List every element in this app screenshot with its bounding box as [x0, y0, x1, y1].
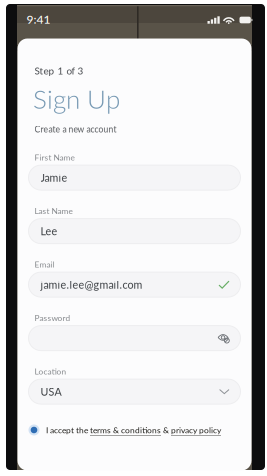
staticText: Jamie — [40, 171, 67, 184]
staticText: 9:41 — [26, 12, 50, 26]
button[interactable]: Lee — [28, 219, 240, 244]
button[interactable]: I accept the terms & conditions & privac… — [28, 423, 240, 437]
staticText: Email — [34, 259, 54, 269]
staticText: USA — [40, 385, 61, 398]
button[interactable]: jamie.lee@gmail.com — [28, 272, 240, 297]
staticText: Last Name — [34, 206, 72, 216]
button[interactable]: Jamie — [28, 165, 240, 190]
staticText: Password — [34, 313, 70, 323]
staticText: Sign Up — [33, 83, 120, 114]
staticText: I accept the terms & conditions & privac… — [46, 425, 221, 435]
staticText: Create a new account — [34, 124, 116, 134]
staticText: Location — [34, 366, 66, 376]
staticText: First Name — [34, 152, 74, 162]
button[interactable]: USA — [28, 379, 240, 404]
staticText: Step 1 of 3 — [34, 65, 83, 76]
button[interactable] — [28, 326, 240, 351]
staticText: Lee — [40, 225, 57, 237]
staticText: jamie.lee@gmail.com — [40, 278, 142, 291]
